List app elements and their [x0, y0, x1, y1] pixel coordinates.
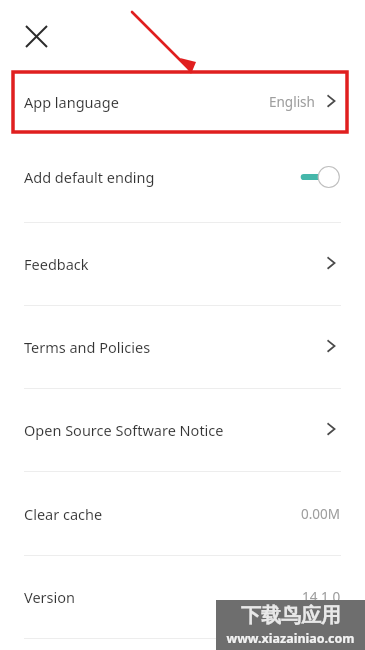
- staticText: Open Source Software Notice: [24, 420, 224, 440]
- staticText: 0.00M: [301, 505, 341, 523]
- staticText: App language: [24, 92, 119, 112]
- button[interactable]: Close: [16, 16, 56, 56]
- staticText: www.xiazainiao.com: [226, 630, 355, 647]
- button[interactable]: Open Source Software Notice: [0, 389, 365, 471]
- staticText: Version: [24, 587, 75, 607]
- button[interactable]: Add default ending: [0, 132, 365, 222]
- button[interactable]: Version: [0, 556, 365, 638]
- button[interactable]: Clear cache: [0, 472, 365, 555]
- button[interactable]: Feedback: [0, 223, 365, 305]
- staticText: Terms and Policies: [24, 337, 151, 357]
- staticText: Clear cache: [24, 504, 103, 524]
- staticText: English: [269, 93, 315, 111]
- button[interactable]: App language: [0, 72, 365, 132]
- staticText: Add default ending: [24, 167, 155, 187]
- button[interactable]: Terms and Policies: [0, 306, 365, 388]
- button[interactable]: Add default ending toggle: [299, 165, 341, 189]
- staticText: 下载鸟应用: [241, 603, 341, 628]
- staticText: 14.1.0: [302, 588, 341, 606]
- staticText: Feedback: [24, 254, 89, 274]
